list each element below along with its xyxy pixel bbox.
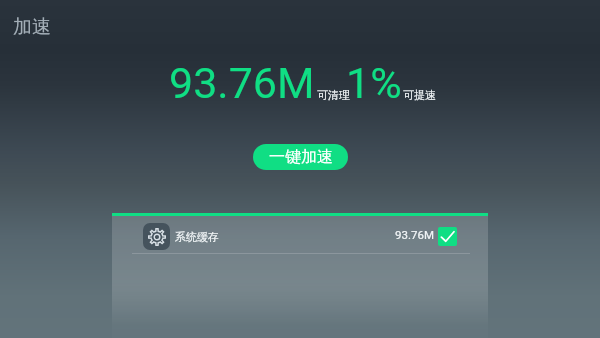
button[interactable]: 一键加速 xyxy=(253,144,348,170)
staticText: 系统缓存 xyxy=(175,230,219,244)
other: Selected xyxy=(438,227,457,246)
button[interactable]: 系统缓存 xyxy=(112,216,488,253)
staticText: 可清理 xyxy=(317,88,350,102)
staticText: 1% xyxy=(346,58,402,108)
staticText: 一键加速 xyxy=(269,147,333,167)
staticText: 加速 xyxy=(13,15,51,39)
staticText: 可提速 xyxy=(403,88,436,102)
staticText: 93.76M xyxy=(395,228,434,241)
staticText: 93.76M xyxy=(169,58,315,108)
